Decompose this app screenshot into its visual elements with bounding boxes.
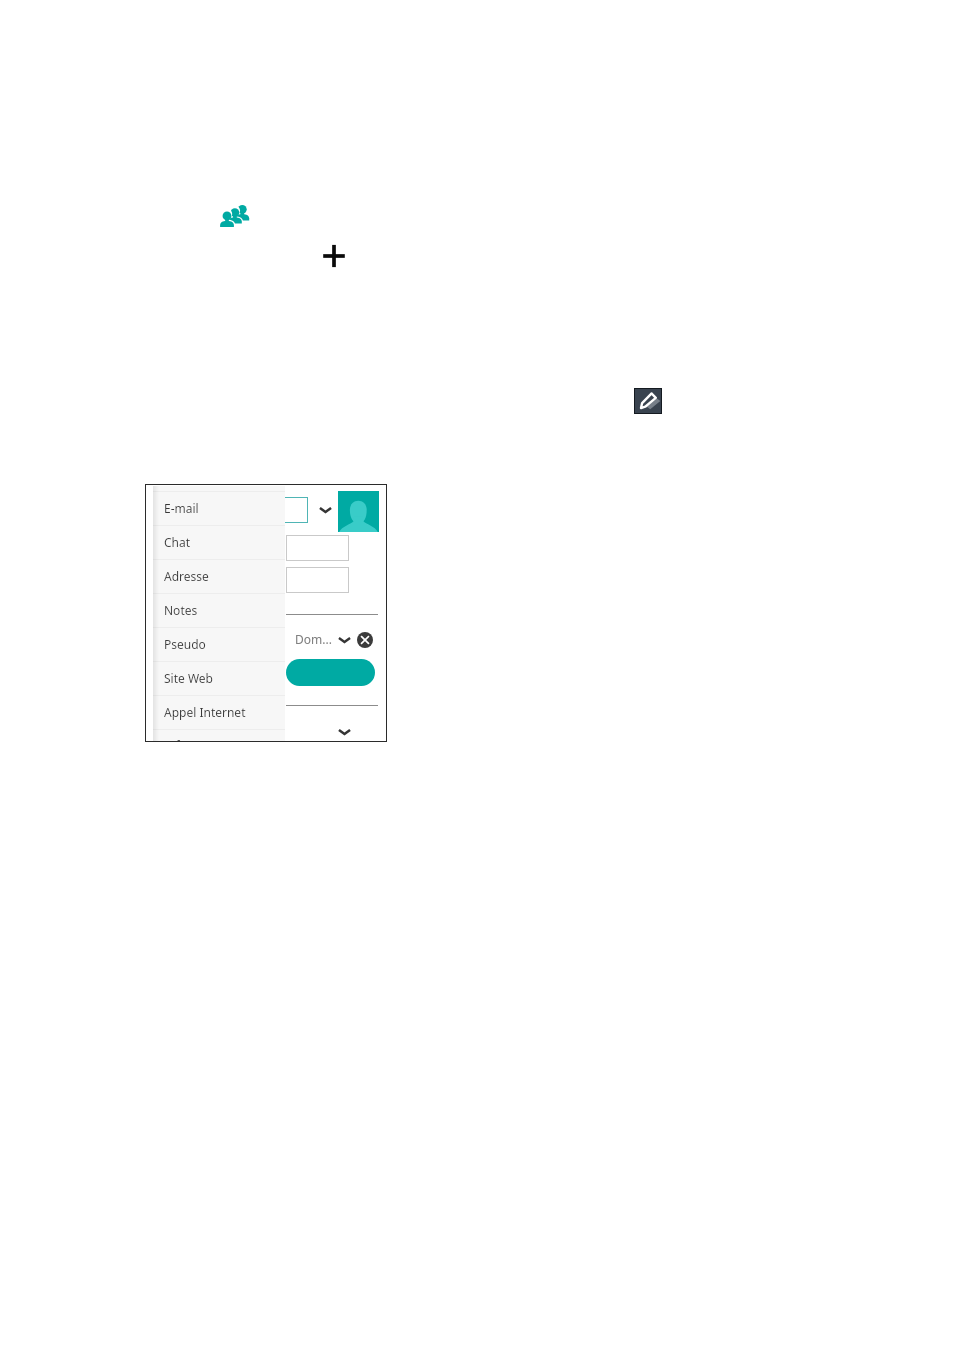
button[interactable] — [286, 659, 375, 686]
button[interactable]: Appel Internet — [153, 696, 285, 729]
staticText: Site Web — [164, 670, 213, 686]
staticText: Adresse — [164, 568, 209, 584]
button[interactable]: Groups — [217, 203, 251, 229]
button[interactable]: Expand domain — [337, 633, 352, 647]
staticText: Chat — [164, 534, 191, 550]
button[interactable]: Notes — [153, 594, 285, 627]
staticText: Dom... — [295, 631, 332, 647]
button[interactable]: Expand type — [318, 503, 333, 517]
button[interactable]: E-mail — [153, 492, 285, 525]
button[interactable]: Edit — [634, 388, 662, 414]
button[interactable]: Chat — [153, 526, 285, 559]
button[interactable]: Clear — [357, 632, 373, 648]
button[interactable]: Show more — [337, 725, 352, 739]
button[interactable]: Pseudo — [153, 628, 285, 661]
button[interactable] — [286, 567, 349, 593]
button[interactable]: Adresse — [153, 560, 285, 593]
staticText: Pseudo — [164, 636, 206, 652]
button[interactable]: Contact photo — [338, 491, 379, 532]
button[interactable]: Add — [319, 241, 349, 271]
staticText: Appel Internet — [164, 704, 246, 720]
staticText: Infos — [164, 737, 193, 742]
button[interactable] — [286, 535, 349, 561]
button[interactable]: Site Web — [153, 662, 285, 695]
button[interactable] — [263, 497, 308, 523]
staticText: Notes — [164, 602, 198, 618]
staticText: E-mail — [164, 500, 199, 516]
button[interactable]: Infos — [153, 730, 285, 741]
